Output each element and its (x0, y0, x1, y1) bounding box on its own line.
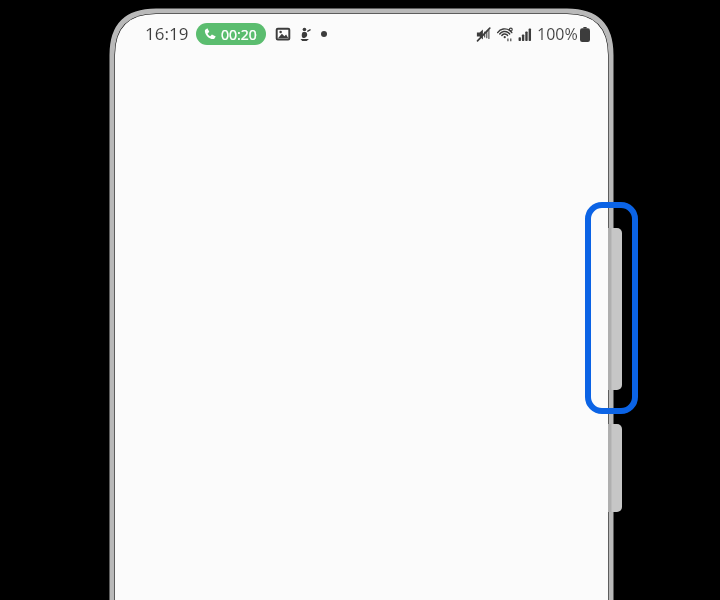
button[interactable]: Highlighted side button (585, 202, 638, 414)
staticText: 00:20 (221, 25, 257, 44)
button[interactable]: 00:20 (196, 23, 266, 45)
staticText: 16:19 (145, 22, 189, 45)
staticText: 100% (537, 23, 578, 45)
